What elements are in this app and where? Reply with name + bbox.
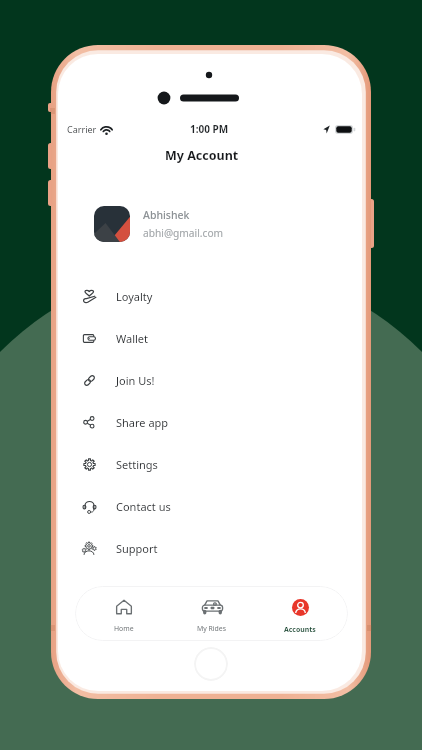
staticText: Accounts	[284, 625, 316, 634]
button[interactable]: Home	[79, 586, 168, 641]
staticText: Wallet	[116, 331, 149, 346]
staticText: Settings	[116, 457, 158, 472]
staticText: Join Us!	[116, 373, 155, 388]
button[interactable]: Accounts	[256, 586, 344, 641]
button[interactable]: Support	[58, 527, 362, 569]
staticText: Contact us	[116, 499, 171, 514]
staticText: My Rides	[197, 624, 227, 633]
staticText: Home	[114, 624, 134, 633]
staticText: abhi@gmail.com	[143, 226, 224, 240]
button[interactable]: Loyalty	[58, 275, 362, 317]
button[interactable]: Share app	[58, 401, 362, 443]
staticText: Support	[116, 541, 158, 556]
button[interactable]: Wallet	[58, 317, 362, 359]
staticText: Share app	[116, 415, 169, 430]
staticText: 1:00 PM	[190, 122, 229, 136]
button[interactable]: Contact us	[58, 485, 362, 527]
button[interactable]: Settings	[58, 443, 362, 485]
staticText: My Account	[165, 147, 239, 164]
button[interactable]: Abhishek	[94, 206, 284, 242]
staticText: Loyalty	[116, 289, 153, 304]
staticText: Carrier	[67, 123, 97, 135]
staticText: Abhishek	[143, 208, 190, 222]
button[interactable]: Join Us!	[58, 359, 362, 401]
button[interactable]: My Rides	[168, 586, 256, 641]
